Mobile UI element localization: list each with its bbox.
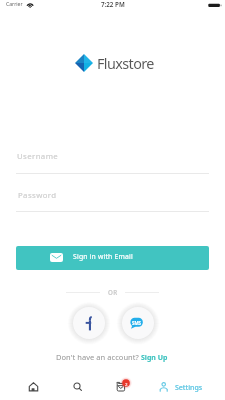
button[interactable]: Home (12, 374, 55, 396)
button[interactable]: Settings (141, 374, 214, 396)
button[interactable] (16, 246, 209, 270)
button[interactable]: Search (55, 374, 98, 396)
staticText: Sign in with Email (73, 252, 133, 261)
button[interactable] (16, 150, 209, 173)
button[interactable]: Sign in with SMS (122, 307, 154, 339)
staticText: SMS (132, 320, 141, 326)
staticText: Carrier (6, 1, 23, 8)
staticText: Fluxstore (97, 54, 154, 74)
staticText: Password (18, 190, 57, 201)
staticText: Username (17, 151, 59, 162)
button[interactable] (139, 351, 169, 364)
button[interactable] (16, 188, 209, 211)
button[interactable]: Sign in with Facebook (73, 307, 105, 339)
staticText: Sign Up (141, 353, 168, 363)
staticText: 7:22 PM (101, 0, 125, 9)
staticText: 2 (125, 381, 128, 387)
staticText: Settings (175, 383, 203, 393)
button[interactable]: Cart (98, 374, 141, 396)
staticText: Don't have an account? (56, 352, 139, 362)
staticText: OR (108, 288, 118, 296)
